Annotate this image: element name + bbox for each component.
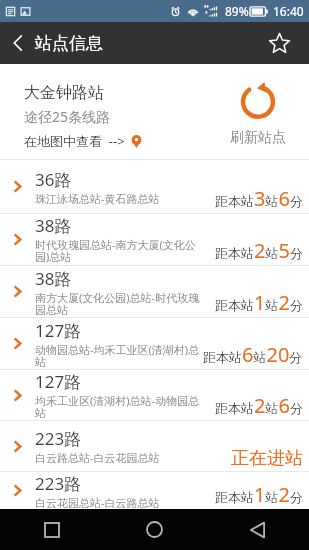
staticText: 白云花园总站-白云路总站	[35, 495, 160, 509]
button[interactable]: 36路	[0, 160, 309, 214]
staticText: 127路	[35, 370, 82, 393]
button[interactable]: Recents	[0, 509, 103, 550]
staticText: 距本站6站20分	[203, 341, 303, 368]
staticText: 127路	[35, 319, 82, 342]
button[interactable]: Favorite	[265, 22, 294, 64]
staticText: 223路	[35, 427, 82, 450]
button[interactable]: 在地图中查看 -->	[24, 132, 142, 150]
staticText: 大金钟路站	[24, 83, 104, 103]
button[interactable]: 223路	[0, 421, 309, 472]
button[interactable]: 站点信息	[0, 22, 103, 64]
staticText: 38路	[35, 214, 72, 237]
staticText: 正在进站	[231, 447, 303, 470]
staticText: 距本站3站6分	[215, 185, 303, 212]
staticText: 南方大厦(文化公园)总站-时代玫瑰园总站	[35, 290, 205, 317]
staticText: 途径25条线路	[24, 107, 111, 126]
button[interactable]: Back	[206, 509, 309, 550]
button[interactable]: Home	[103, 509, 206, 550]
staticText: 动物园总站-均禾工业区(清湖村)总站	[35, 342, 205, 369]
staticText: 白云路总站-白云花园总站	[35, 450, 160, 465]
staticText: 时代玫瑰园总站-南方大厦(文化公园)总站	[35, 237, 205, 265]
button[interactable]: 38路	[0, 214, 309, 266]
staticText: 38路	[35, 267, 72, 290]
staticText: 36路	[35, 168, 72, 191]
staticText: 距本站2站5分	[215, 237, 303, 264]
button[interactable]: 223路	[0, 472, 309, 509]
staticText: 均禾工业区(清湖村)总站-动物园总站	[35, 393, 205, 420]
staticText: 站点信息	[35, 33, 103, 54]
staticText: 223路	[35, 472, 82, 495]
button[interactable]: 刷新站点	[230, 79, 286, 147]
staticText: 珠江泳场总站-黄石路总站	[35, 191, 160, 206]
button[interactable]: 127路	[0, 318, 309, 370]
staticText: 距本站1站2分	[215, 289, 303, 316]
staticText: 89%	[225, 3, 249, 19]
staticText: 刷新站点	[230, 129, 286, 147]
button[interactable]: 38路	[0, 266, 309, 318]
button[interactable]: 127路	[0, 370, 309, 421]
staticText: 16:40	[273, 3, 304, 19]
staticText: 距本站1站2分	[215, 481, 303, 508]
staticText: 距本站2站6分	[215, 392, 303, 419]
staticText: 在地图中查看 -->	[24, 132, 125, 150]
